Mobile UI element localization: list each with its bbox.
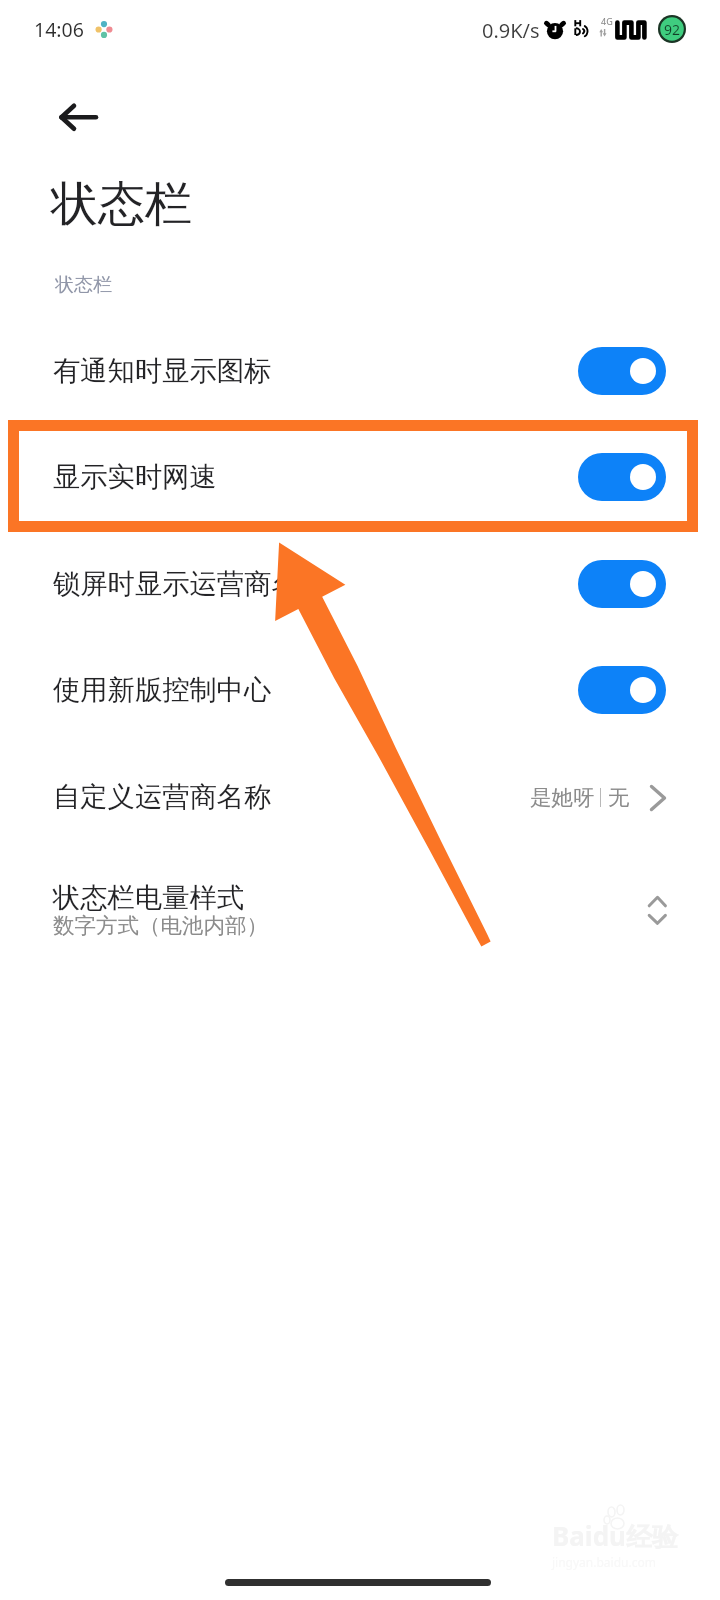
- staticText: 14:06: [34, 16, 84, 43]
- staticText: 无: [608, 784, 630, 811]
- button[interactable]: 选择电量样式: [643, 891, 671, 929]
- button[interactable]: 使用新版控制中心 开关，已开启: [578, 666, 666, 714]
- staticText: 有通知时显示图标: [53, 354, 272, 388]
- staticText: 使用新版控制中心: [53, 673, 272, 707]
- button[interactable]: Back: [45, 85, 109, 149]
- button[interactable]: 有通知时显示图标 开关，已开启: [578, 347, 666, 395]
- staticText: 0.9K/s: [482, 17, 540, 44]
- staticText: 锁屏时显示运营商名称: [53, 567, 326, 601]
- staticText: 状态栏电量样式: [53, 881, 245, 915]
- staticText: 数字方式（电池内部）: [53, 912, 268, 939]
- button[interactable]: 使用新版控制中心: [0, 637, 720, 743]
- button[interactable]: 有通知时显示图标: [0, 318, 720, 424]
- staticText: 92: [664, 20, 681, 39]
- button[interactable]: 显示实时网速: [0, 424, 720, 530]
- button[interactable]: 显示实时网速 开关，已开启: [578, 453, 666, 501]
- staticText: 是她呀: [530, 784, 595, 811]
- staticText: 4G: [601, 15, 613, 27]
- staticText: Baidu经验: [552, 1518, 678, 1554]
- staticText: 显示实时网速: [53, 460, 217, 494]
- button[interactable]: 状态栏电量样式: [0, 858, 720, 964]
- staticText: 自定义运营商名称: [53, 780, 272, 814]
- button[interactable]: 锁屏时显示运营商名称 开关，已开启: [578, 560, 666, 608]
- staticText: 状态栏: [55, 273, 112, 297]
- staticText: 状态栏: [51, 175, 192, 234]
- button[interactable]: 自定义运营商名称: [0, 744, 720, 850]
- button[interactable]: 锁屏时显示运营商名称: [0, 531, 720, 637]
